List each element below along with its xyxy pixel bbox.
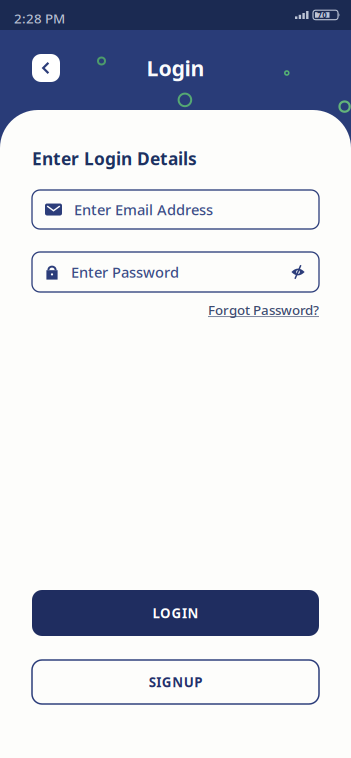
- button[interactable]: Enter Password: [32, 252, 319, 292]
- button[interactable]: Back: [32, 54, 60, 82]
- button[interactable]: SIGNUP: [32, 660, 319, 704]
- button[interactable]: LOGIN: [32, 590, 319, 636]
- staticText: Forgot Password?: [208, 301, 319, 319]
- button[interactable]: Enter Email Address: [32, 190, 319, 229]
- staticText: Login: [146, 54, 204, 82]
- staticText: Enter Email Address: [74, 200, 213, 219]
- staticText: SIGNUP: [149, 673, 202, 691]
- button[interactable]: Forgot Password?: [208, 301, 319, 319]
- staticText: Enter Password: [71, 262, 179, 282]
- staticText: 2:28 PM: [14, 9, 65, 27]
- staticText: Enter Login Details: [32, 147, 197, 170]
- staticText: 70: [317, 10, 327, 20]
- staticText: LOGIN: [152, 604, 198, 622]
- button[interactable]: Show Password: [283, 257, 313, 287]
